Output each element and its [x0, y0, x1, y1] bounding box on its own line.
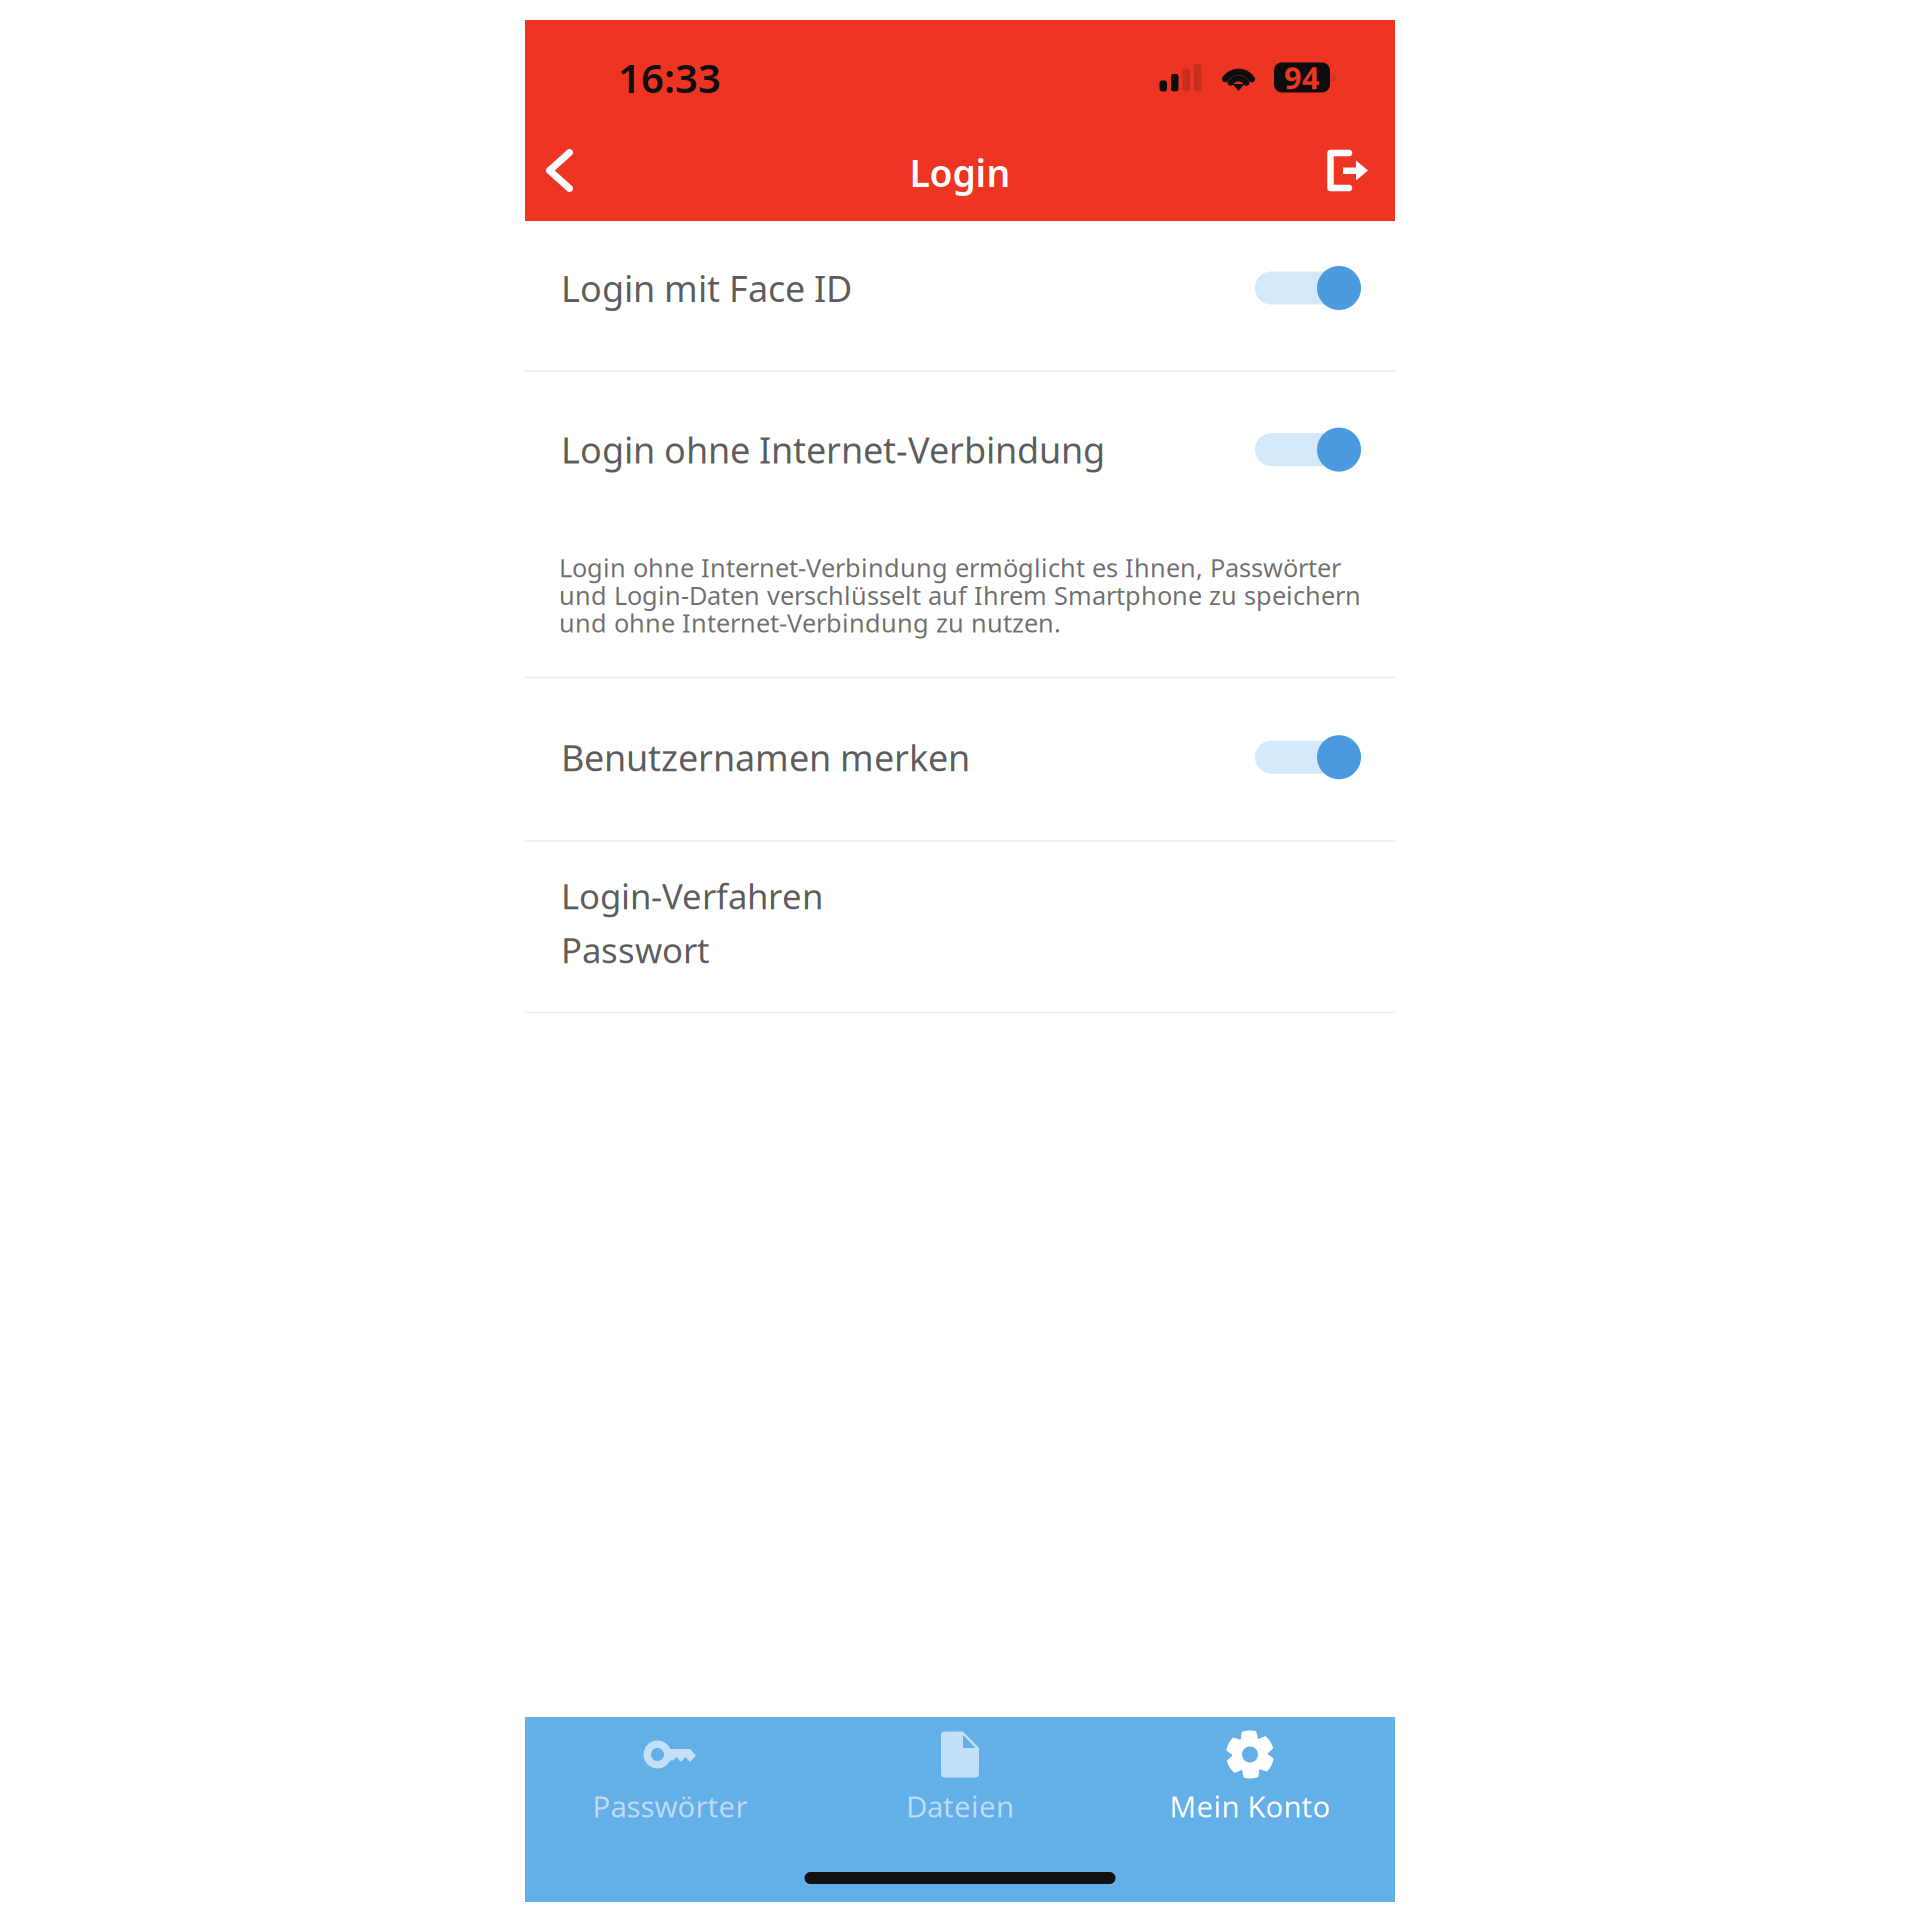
staticText: Passwort	[561, 927, 710, 973]
staticText: Dateien	[906, 1786, 1014, 1825]
button[interactable]: Login mit Face ID	[525, 221, 1395, 355]
button[interactable]: Mein Konto	[1105, 1717, 1395, 1842]
staticText: Passwörter	[592, 1786, 747, 1825]
button[interactable]: Dateien	[815, 1717, 1105, 1842]
staticText: Login-Verfahren	[561, 873, 823, 919]
staticText: Login mit Face ID	[561, 264, 852, 312]
button[interactable]: Login-Verfahren	[525, 842, 1395, 1012]
button[interactable]: Benutzernamen merken	[525, 678, 1395, 836]
staticText: Login ohne Internet-Verbindung	[561, 426, 1105, 473]
staticText: Mein Konto	[1169, 1786, 1330, 1825]
button[interactable]: Back	[524, 120, 594, 221]
button[interactable]: Passwörter	[525, 1717, 815, 1842]
staticText: Benutzernamen merken	[561, 733, 970, 781]
staticText: 94	[1284, 57, 1320, 98]
staticText: Login	[909, 148, 1010, 197]
button[interactable]: Login ohne Internet-Verbindung	[525, 372, 1395, 528]
staticText: Login ohne Internet-Verbindung ermöglich…	[559, 551, 1361, 639]
staticText: 16:33	[618, 51, 721, 104]
button[interactable]: Log out	[1313, 120, 1383, 221]
